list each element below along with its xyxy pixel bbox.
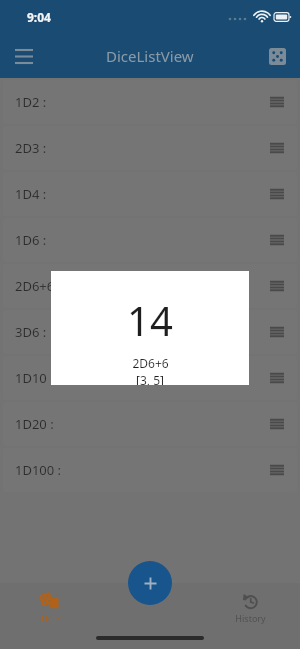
button[interactable]: 2D3 : xyxy=(3,126,297,170)
button[interactable]: 3D6 : xyxy=(3,310,297,354)
staticText: 2D6+6 xyxy=(132,355,169,371)
staticText: 1D4 : xyxy=(15,185,47,203)
button[interactable]: 2D6+6 : xyxy=(3,264,297,308)
staticText: 14 xyxy=(127,293,173,347)
button[interactable]: 1D20 : xyxy=(3,402,297,446)
button[interactable]: 1D2 : xyxy=(3,80,297,124)
button[interactable]: Reorder 3D6 : xyxy=(263,318,291,346)
button[interactable]: Open navigation menu xyxy=(6,38,42,74)
button[interactable]: 14 xyxy=(51,271,249,385)
staticText: Dice xyxy=(41,612,60,624)
button[interactable]: Dice xyxy=(0,583,100,633)
staticText: 1D10 : xyxy=(15,369,54,387)
staticText: 9:04 xyxy=(27,9,51,25)
staticText: 1D6 : xyxy=(15,231,47,249)
staticText: 2D6+6 : xyxy=(15,277,62,295)
button[interactable]: Reorder 1D6 : xyxy=(263,226,291,254)
button[interactable]: Reorder 2D6+6 : xyxy=(263,272,291,300)
button[interactable]: Add dice xyxy=(128,561,172,605)
staticText: 2D3 : xyxy=(15,139,47,157)
button[interactable]: 1D100 : xyxy=(3,448,297,492)
staticText: History xyxy=(235,612,266,624)
button[interactable]: 1D6 : xyxy=(3,218,297,262)
button[interactable]: Reorder 1D20 : xyxy=(263,410,291,438)
staticText: 1D100 : xyxy=(15,461,62,479)
button[interactable]: 1D4 : xyxy=(3,172,297,216)
staticText: DiceListView xyxy=(106,46,194,66)
button[interactable]: Reorder 1D10 : xyxy=(263,364,291,392)
staticText: [3, 5] xyxy=(136,372,164,385)
button[interactable]: Reorder 1D2 : xyxy=(263,88,291,116)
button[interactable]: History xyxy=(200,583,300,633)
button[interactable]: Roll all dice xyxy=(260,39,294,73)
button[interactable]: Reorder 1D100 : xyxy=(263,456,291,484)
staticText: 1D20 : xyxy=(15,415,54,433)
button[interactable]: Reorder 2D3 : xyxy=(263,134,291,162)
staticText: 3D6 : xyxy=(15,323,47,341)
button[interactable]: 1D10 : xyxy=(3,356,297,400)
staticText: 1D2 : xyxy=(15,93,47,111)
button[interactable]: Reorder 1D4 : xyxy=(263,180,291,208)
